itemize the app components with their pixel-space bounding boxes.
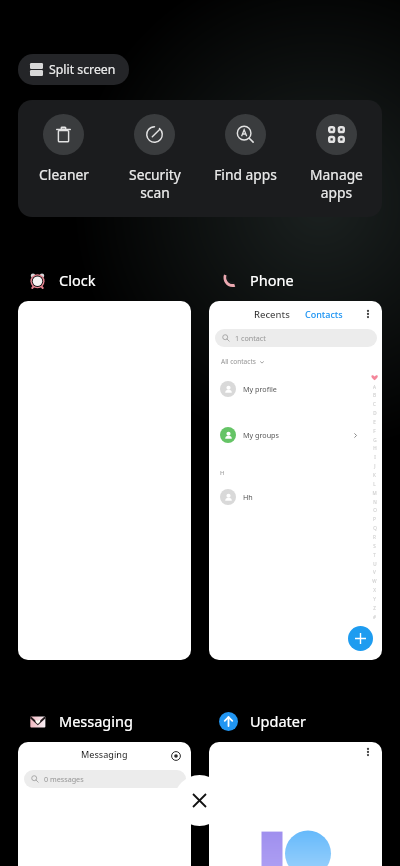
staticText: P (373, 516, 376, 522)
staticText: Manage apps (310, 165, 363, 202)
staticText: Cleaner (39, 165, 89, 184)
button[interactable]: Messaging (27, 709, 133, 733)
staticText: W (372, 578, 377, 584)
staticText: Security scan (129, 165, 181, 202)
staticText: Find apps (214, 165, 277, 184)
staticText: 0 messages (44, 774, 84, 784)
staticText: G (373, 437, 377, 443)
button[interactable]: Find apps (200, 100, 291, 217)
staticText: # (373, 614, 376, 620)
staticText: Z (373, 605, 376, 611)
staticText: Hh (243, 492, 253, 502)
staticText: My profile (243, 384, 277, 394)
staticText: B (373, 392, 376, 398)
button[interactable]: Close all (174, 775, 225, 826)
staticText: C (373, 401, 376, 407)
staticText: All contacts (221, 357, 256, 366)
staticText: Split screen (49, 61, 116, 78)
staticText: T (373, 552, 376, 558)
staticText: Updater (250, 711, 306, 731)
staticText: F (373, 428, 376, 434)
staticText: Messaging (81, 748, 128, 760)
button[interactable]: Updater (218, 709, 306, 733)
button[interactable]: Cleaner (18, 100, 109, 217)
staticText: L (373, 481, 376, 487)
staticText: Phone (250, 270, 294, 290)
staticText: Messaging (59, 711, 133, 731)
staticText: Q (373, 525, 377, 531)
button[interactable]: Add contact (348, 626, 373, 651)
staticText: U (373, 561, 377, 567)
staticText: E (373, 419, 376, 425)
staticText: K (373, 472, 376, 478)
staticText: M (372, 490, 377, 496)
button[interactable] (18, 301, 191, 660)
button[interactable]: Manage apps (291, 100, 382, 217)
button[interactable] (209, 742, 382, 866)
staticText: X (373, 587, 376, 593)
staticText: A (373, 384, 376, 390)
staticText: S (373, 543, 376, 549)
button[interactable]: Security scan (109, 100, 200, 217)
staticText: Recents (254, 308, 290, 321)
staticText: Clock (59, 270, 96, 290)
staticText: H (220, 469, 225, 477)
staticText: V (373, 569, 376, 575)
staticText: H (373, 445, 377, 451)
staticText: N (373, 499, 377, 505)
staticText: Contacts (305, 308, 343, 320)
staticText: My groups (243, 430, 279, 440)
button[interactable]: Messaging (18, 742, 191, 866)
staticText: I (374, 454, 376, 460)
button[interactable]: Clock (27, 268, 96, 292)
button[interactable]: Recents (209, 301, 382, 660)
staticText: D (373, 410, 377, 416)
button[interactable]: Split screen (18, 54, 129, 85)
staticText: Y (373, 596, 376, 602)
staticText: R (373, 534, 376, 540)
button[interactable]: Phone (218, 268, 294, 292)
staticText: 1 contact (235, 333, 266, 343)
staticText: O (373, 507, 377, 513)
staticText: J (374, 463, 376, 469)
